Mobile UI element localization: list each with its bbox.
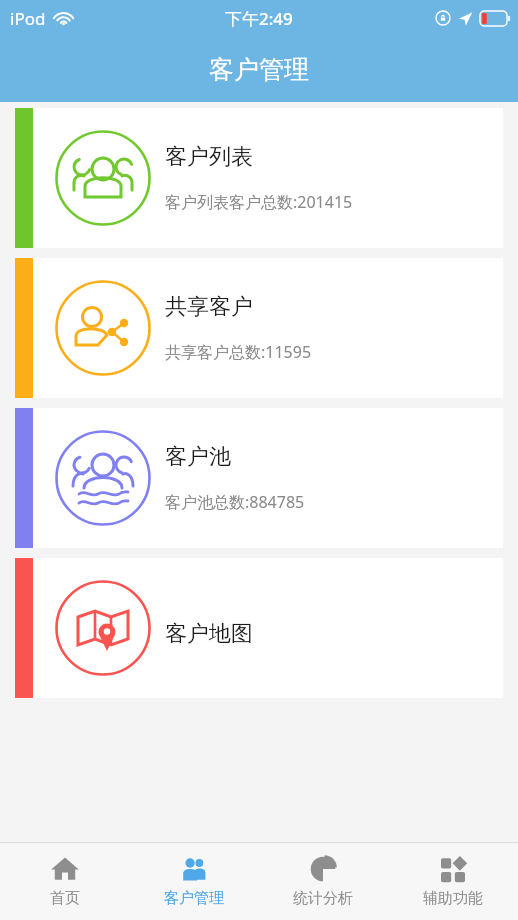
- staticText: 共享客户: [165, 293, 253, 321]
- button[interactable]: 客户列表: [15, 108, 503, 248]
- button[interactable]: 客户管理: [129, 842, 258, 920]
- button[interactable]: 共享客户: [15, 258, 503, 398]
- staticText: 客户管理: [164, 889, 224, 908]
- staticText: 共享客户总数:11595: [165, 341, 312, 363]
- staticText: 客户池总数:884785: [165, 491, 305, 513]
- staticText: 客户池: [165, 443, 231, 471]
- button[interactable]: 客户池: [15, 408, 503, 548]
- button[interactable]: 客户地图: [15, 558, 503, 698]
- staticText: 首页: [50, 889, 80, 908]
- staticText: 辅助功能: [423, 889, 483, 908]
- staticText: 客户地图: [165, 620, 253, 648]
- staticText: 客户列表客户总数:201415: [165, 191, 353, 213]
- staticText: 统计分析: [293, 889, 353, 908]
- button[interactable]: 首页: [0, 842, 129, 920]
- staticText: 客户管理: [209, 54, 309, 85]
- button[interactable]: 辅助功能: [388, 842, 518, 920]
- button[interactable]: 统计分析: [258, 842, 388, 920]
- staticText: 下午2:49: [225, 7, 293, 30]
- staticText: iPod: [10, 7, 46, 30]
- staticText: 客户列表: [165, 143, 253, 171]
